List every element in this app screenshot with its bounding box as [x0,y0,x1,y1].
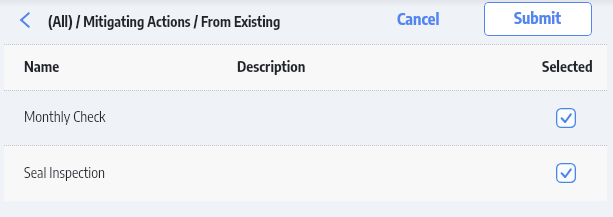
button[interactable]: Monthly Check [4,91,607,145]
button[interactable]: Back [12,0,38,42]
staticText: Selected [542,57,593,75]
staticText: (All) / Mitigating Actions / From Existi… [48,13,281,31]
staticText: Submit [514,8,562,28]
staticText: Cancel [397,9,440,29]
staticText: Seal Inspection [24,163,106,181]
button[interactable]: Submit [484,2,592,36]
staticText: Name [24,57,60,75]
staticText: Monthly Check [24,107,106,125]
button[interactable]: Selected [556,163,576,183]
button[interactable]: Seal Inspection [4,146,607,201]
button[interactable]: Selected [556,108,576,128]
button[interactable]: Cancel [386,0,450,41]
staticText: Description [237,57,306,75]
